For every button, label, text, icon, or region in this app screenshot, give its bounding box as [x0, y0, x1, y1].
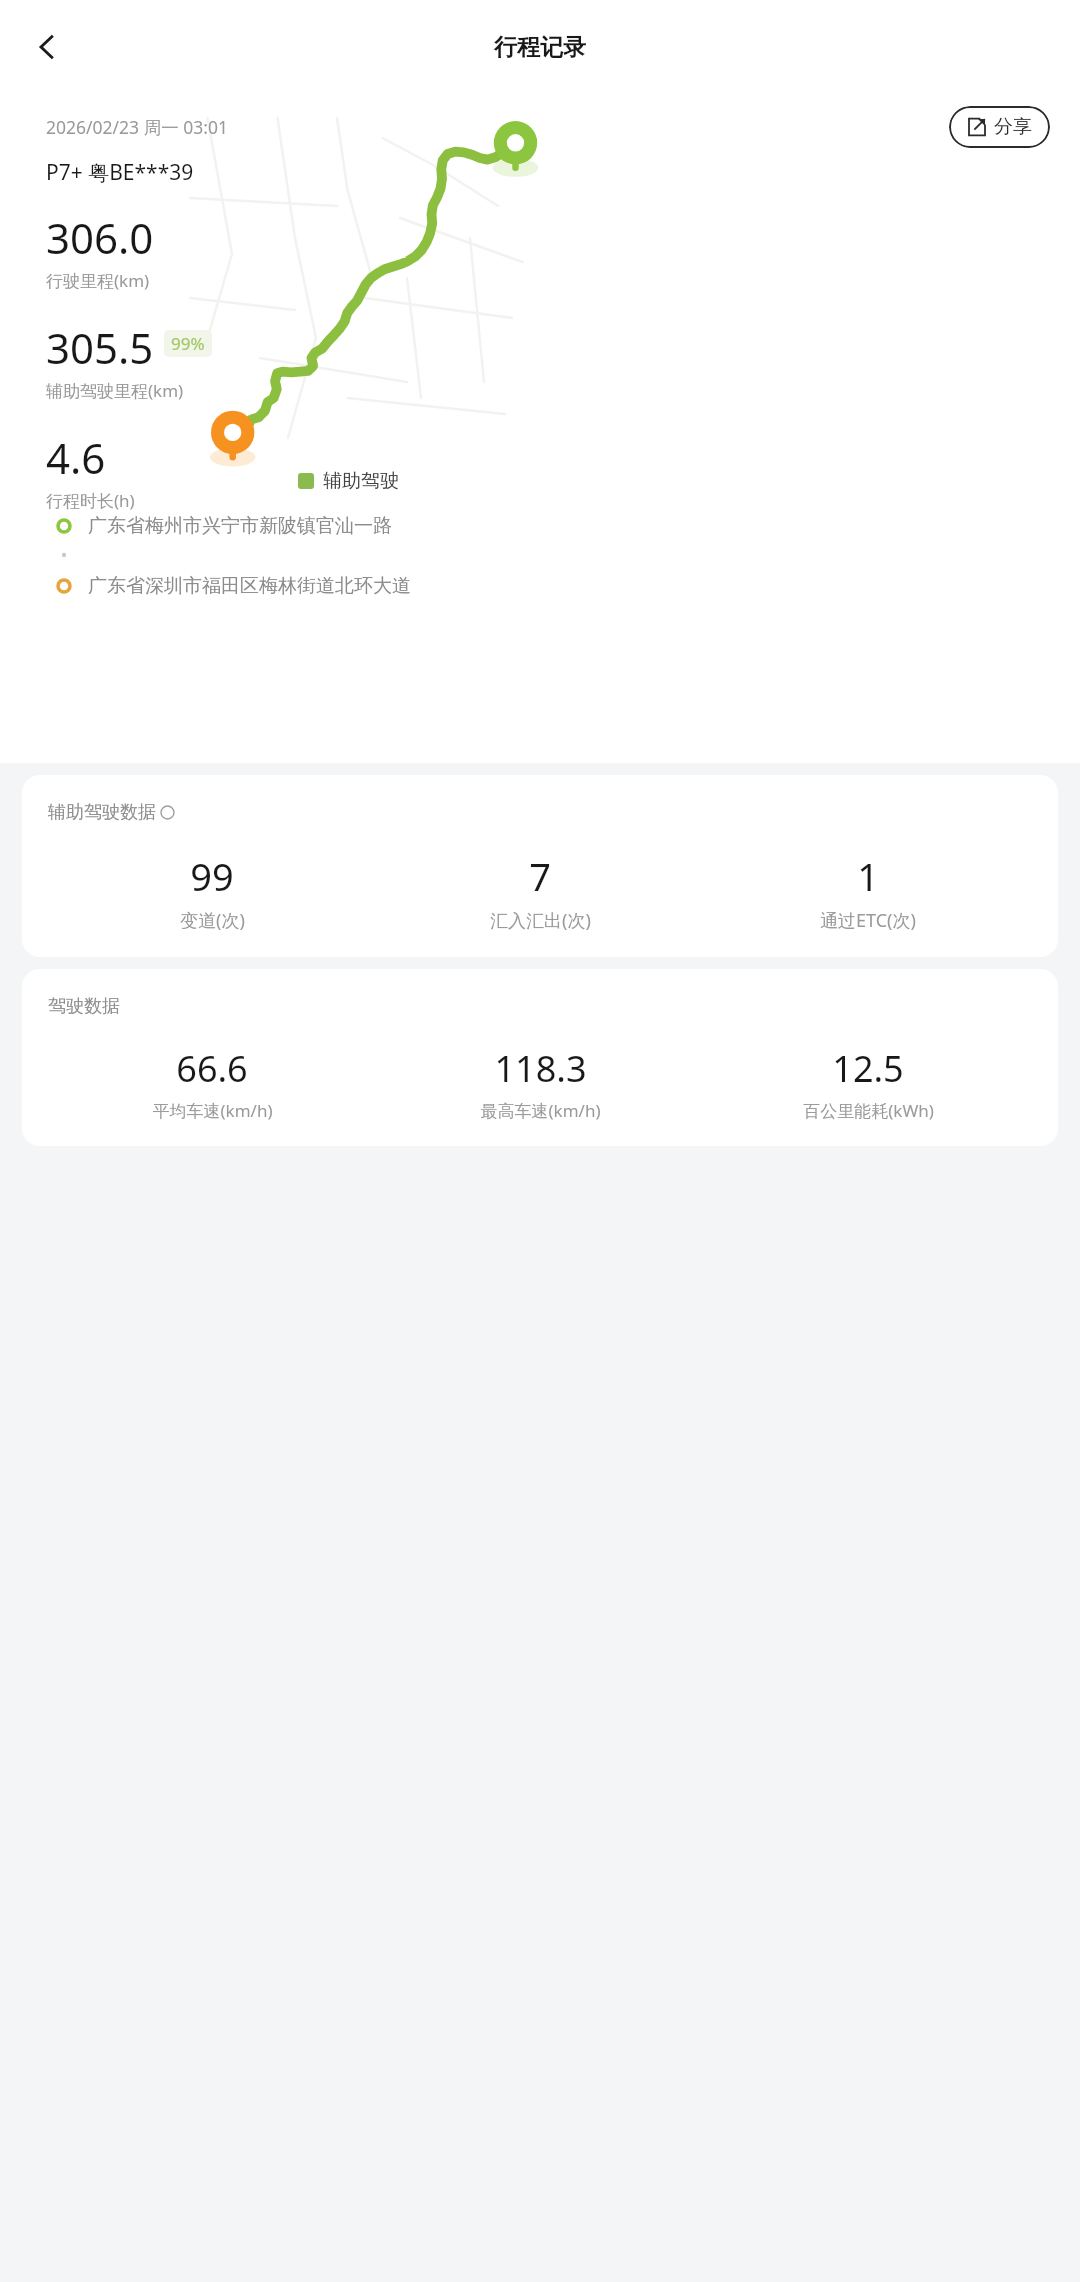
staticText: 驾驶数据 [48, 995, 120, 1018]
staticText: 2026/02/23 周一 03:01 [46, 115, 228, 139]
staticText: 7 [529, 850, 551, 902]
staticText: 最高车速(km/h) [480, 1099, 601, 1122]
button[interactable]: Back [18, 18, 76, 76]
staticText: 118.3 [494, 1044, 587, 1093]
staticText: 4.6 [46, 429, 106, 486]
button[interactable]: 辅助驾驶数据 [22, 775, 1058, 957]
staticText: 行程时长(h) [46, 489, 135, 512]
staticText: 汇入汇出(次) [490, 908, 591, 933]
staticText: 百公里能耗(kWh) [803, 1099, 934, 1122]
staticText: 辅助驾驶 [323, 469, 399, 493]
staticText: 66.6 [176, 1044, 248, 1093]
button[interactable]: 驾驶数据 [22, 969, 1058, 1146]
staticText: 306.0 [46, 209, 154, 266]
button[interactable]: 分享 [949, 106, 1050, 148]
staticText: 行程记录 [494, 33, 586, 62]
staticText: 99 [190, 850, 234, 902]
staticText: 变道(次) [180, 908, 245, 933]
staticText: 广东省梅州市兴宁市新陂镇官汕一路 [88, 514, 392, 538]
staticText: 广东省深圳市福田区梅林街道北环大道 [88, 574, 411, 598]
staticText: 分享 [994, 115, 1032, 139]
staticText: 平均车速(km/h) [152, 1099, 273, 1122]
staticText: P7+ 粤BE***39 [46, 158, 194, 187]
staticText: 99% [171, 332, 205, 355]
staticText: 12.5 [832, 1044, 904, 1093]
staticText: 305.5 [46, 319, 154, 376]
staticText: 辅助驾驶里程(km) [46, 379, 184, 402]
staticText: 辅助驾驶数据 [48, 801, 156, 824]
staticText: 行驶里程(km) [46, 269, 150, 292]
staticText: 通过ETC(次) [820, 908, 916, 933]
staticText: 1 [857, 850, 879, 902]
